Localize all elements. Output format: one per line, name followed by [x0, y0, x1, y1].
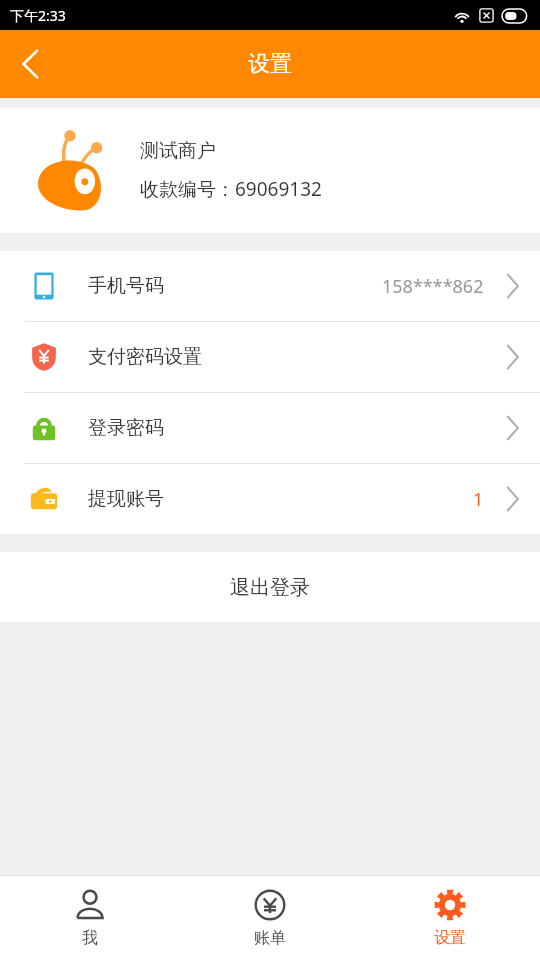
button[interactable]: 登录密码	[0, 393, 540, 463]
button[interactable]: 支付密码设置	[0, 322, 540, 392]
staticText: 设置	[434, 928, 466, 948]
staticText: 提现账号	[88, 487, 164, 511]
staticText: 设置	[248, 50, 292, 78]
button[interactable]: 账单	[180, 876, 360, 960]
button[interactable]: 我	[0, 876, 180, 960]
staticText: 1	[473, 487, 484, 512]
staticText: 退出登录	[230, 575, 310, 600]
button[interactable]: 测试商户	[0, 108, 540, 233]
staticText: 账单	[254, 928, 286, 948]
staticText: 我	[82, 928, 98, 948]
staticText: 手机号码	[88, 274, 164, 298]
staticText: 测试商户	[140, 139, 216, 163]
button[interactable]: 设置	[360, 876, 540, 960]
staticText: 支付密码设置	[88, 345, 202, 369]
staticText: 下午2:33	[10, 6, 66, 25]
staticText: 登录密码	[88, 416, 164, 440]
button[interactable]: Back	[0, 30, 62, 98]
button[interactable]: 提现账号	[0, 464, 540, 534]
button[interactable]: 手机号码	[0, 251, 540, 321]
staticText: 收款编号：69069132	[140, 176, 322, 202]
staticText: 158****862	[382, 274, 484, 299]
button[interactable]: 退出登录	[0, 552, 540, 622]
